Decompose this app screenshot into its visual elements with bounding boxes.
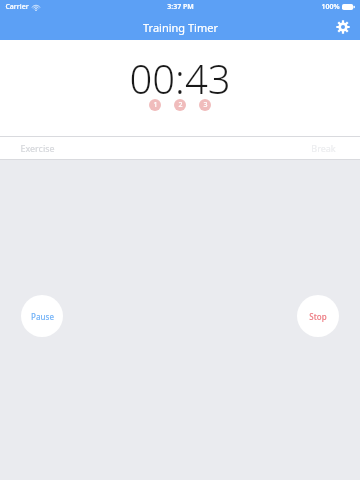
staticText: 1	[153, 100, 158, 110]
staticText: Break	[311, 142, 336, 154]
button[interactable]: Settings	[332, 16, 354, 38]
staticText: Training Timer	[143, 20, 218, 35]
button[interactable]: Stop	[297, 295, 339, 337]
button[interactable]: 3	[199, 99, 211, 111]
staticText: Stop	[309, 311, 327, 322]
staticText: 100%	[321, 2, 340, 12]
staticText: 3	[203, 100, 208, 110]
staticText: Exercise	[20, 142, 55, 154]
staticText: Pause	[31, 311, 54, 322]
staticText: 00:43	[129, 51, 231, 105]
button[interactable]: 2	[174, 99, 186, 111]
button[interactable]: 1	[149, 99, 161, 111]
button[interactable]: Break	[305, 139, 342, 157]
staticText: 2	[178, 100, 183, 110]
staticText: Carrier	[5, 2, 29, 12]
button[interactable]: Pause	[21, 295, 63, 337]
button[interactable]: Exercise	[14, 139, 61, 157]
staticText: 3:37 PM	[167, 2, 194, 12]
